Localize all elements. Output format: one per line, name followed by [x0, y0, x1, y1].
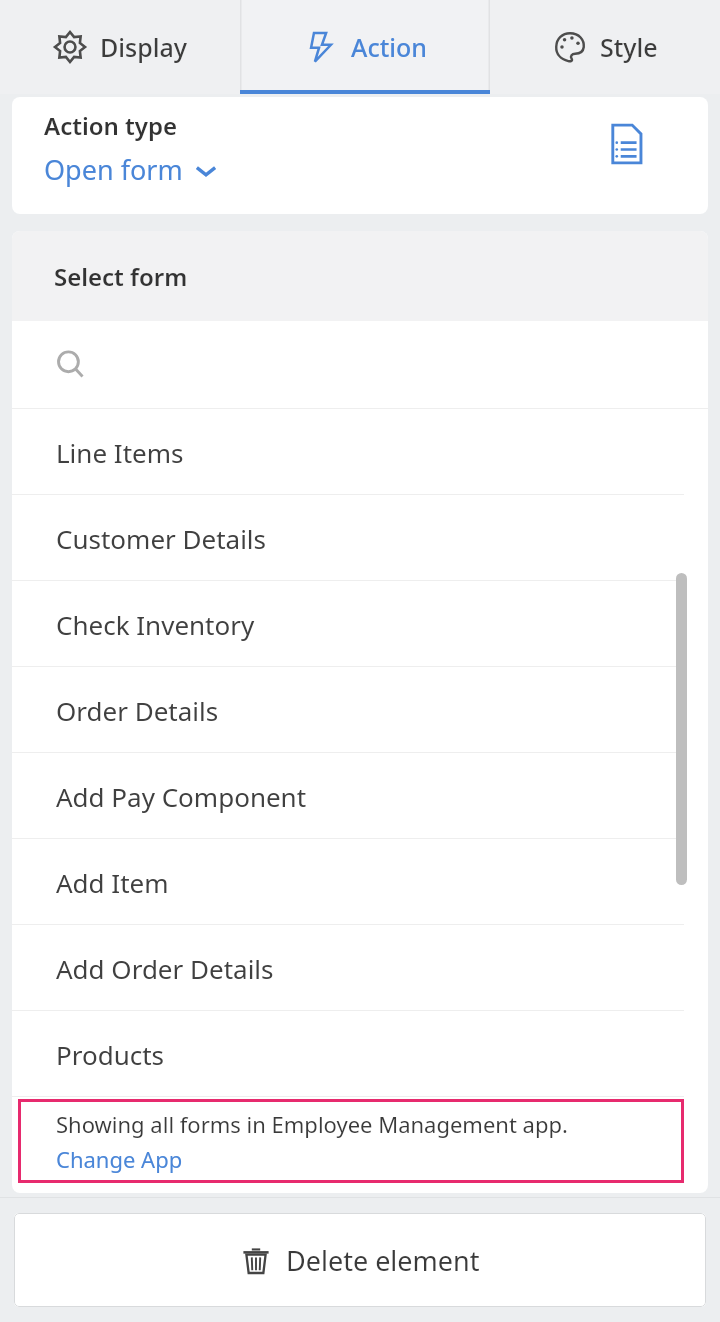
button[interactable]: Change App: [56, 1144, 183, 1174]
button[interactable]: Add Item: [12, 839, 708, 925]
button[interactable]: Products: [12, 1011, 708, 1097]
button[interactable]: Check Inventory: [12, 581, 708, 667]
button[interactable]: Action: [240, 0, 490, 94]
staticText: Add Pay Component: [56, 779, 307, 814]
button[interactable]: Add Pay Component: [12, 753, 708, 839]
staticText: Check Inventory: [56, 607, 255, 642]
button[interactable]: Line Items: [12, 409, 708, 495]
button[interactable]: Open form: [44, 151, 218, 188]
staticText: Style: [600, 30, 658, 64]
staticText: Customer Details: [56, 521, 267, 556]
button[interactable]: Open form document: [602, 120, 650, 168]
other: Search forms: [54, 348, 88, 382]
button[interactable]: Search forms: [12, 321, 708, 409]
staticText: Action type: [44, 109, 178, 142]
button[interactable]: Display: [0, 0, 240, 94]
button[interactable]: Style: [490, 0, 720, 94]
staticText: Products: [56, 1037, 165, 1072]
staticText: Add Item: [56, 865, 169, 900]
staticText: Order Details: [56, 693, 219, 728]
staticText: Showing all forms in Employee Management…: [56, 1109, 568, 1139]
staticText: Display: [100, 30, 187, 64]
button[interactable]: Customer Details: [12, 495, 708, 581]
staticText: Add Order Details: [56, 951, 274, 986]
button[interactable]: Delete element: [14, 1213, 706, 1307]
staticText: Open form: [44, 151, 183, 188]
staticText: Select form: [54, 260, 188, 293]
button[interactable]: Order Details: [12, 667, 708, 753]
button[interactable]: Add Order Details: [12, 925, 708, 1011]
staticText: Change App: [56, 1144, 183, 1174]
staticText: Delete element: [286, 1242, 480, 1279]
staticText: Line Items: [56, 435, 184, 470]
staticText: Action: [351, 30, 427, 64]
